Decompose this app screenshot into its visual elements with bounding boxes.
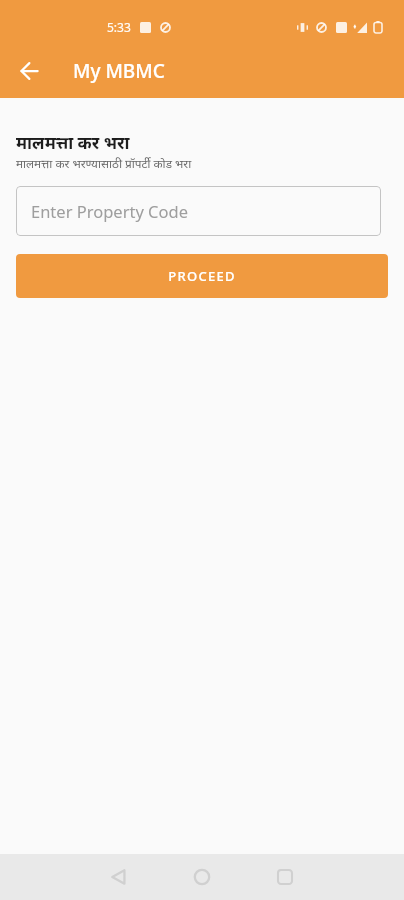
staticText: PROCEED (168, 267, 236, 285)
staticText: Enter Property Code (31, 200, 188, 222)
button[interactable]: Home (178, 854, 226, 900)
button[interactable]: Back (7, 49, 51, 93)
staticText: 5:33 (107, 19, 131, 35)
button[interactable]: Enter Property Code (16, 186, 381, 236)
staticText: My MBMC (73, 58, 165, 84)
staticText: मालमत्ता कर भरण्यासाठी प्रॉपर्टी कोड भरा (16, 155, 192, 171)
button[interactable]: Recents (261, 854, 309, 900)
staticText: मालमत्ता कर भरा (16, 131, 130, 154)
button[interactable]: PROCEED (16, 254, 388, 298)
button[interactable]: Back (95, 854, 143, 900)
